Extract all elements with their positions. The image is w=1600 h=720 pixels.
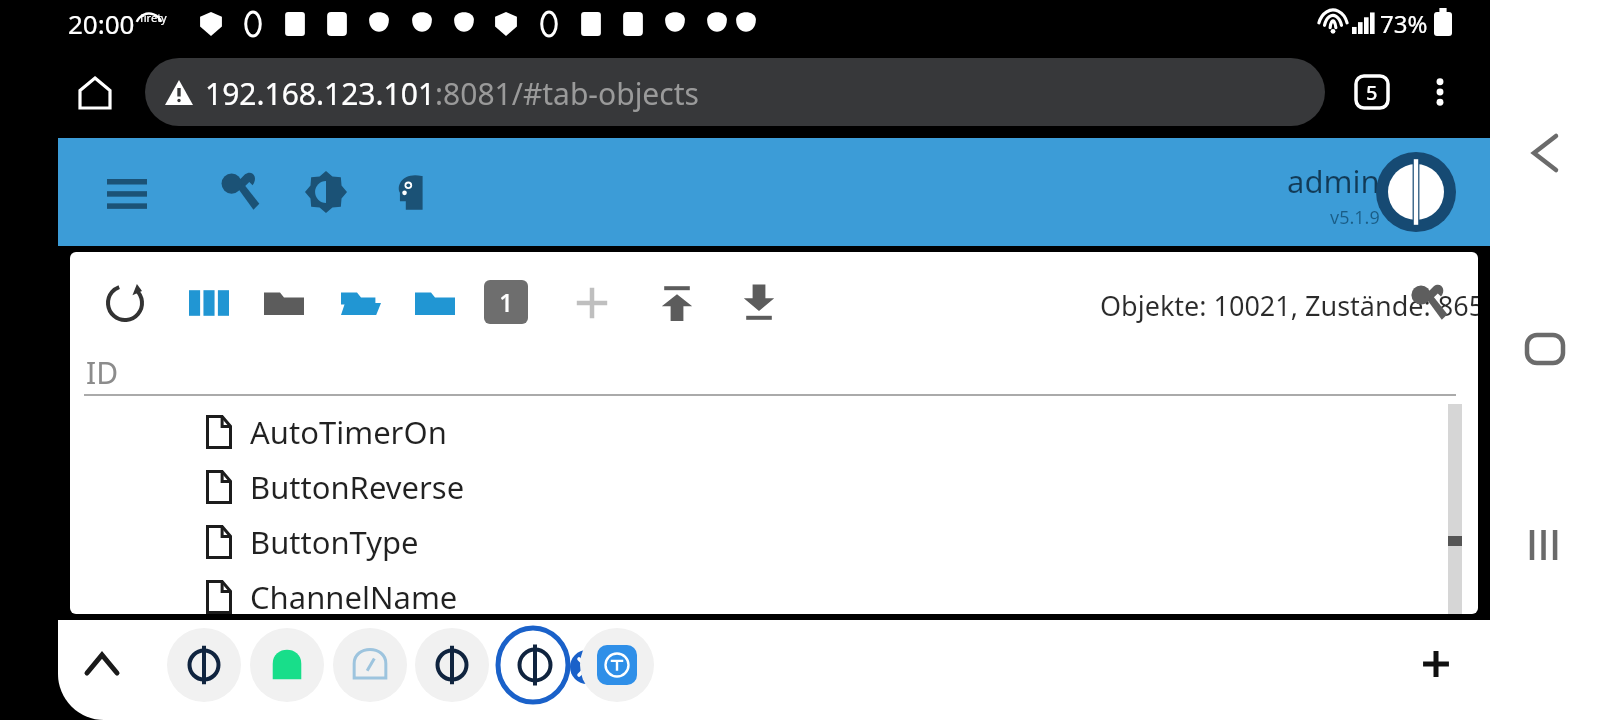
button[interactable]: Import [648, 274, 706, 332]
staticText: 20:00 [68, 6, 135, 41]
button[interactable]: Configure [1400, 274, 1458, 332]
button[interactable]: Tab 3 [329, 624, 411, 706]
staticText: ID [86, 352, 119, 393]
button[interactable]: Depth 1 [484, 280, 528, 324]
button[interactable]: Brightness [294, 160, 358, 224]
staticText: 73% [1380, 7, 1428, 40]
button[interactable]: Expand [72, 634, 132, 694]
button[interactable]: ChannelName [70, 569, 1450, 614]
button[interactable]: Tab 5 [494, 624, 576, 706]
button[interactable]: Tab 1 [163, 624, 245, 706]
button[interactable]: More options [1416, 68, 1464, 116]
button[interactable]: Add [563, 274, 621, 332]
staticText: Objekte: 10021, Zustände: 8652 [1100, 287, 1478, 324]
button[interactable]: Export [730, 274, 788, 332]
button[interactable]: ButtonReverse [70, 459, 1450, 514]
staticText: 1 [499, 285, 514, 319]
button[interactable]: Refresh [96, 274, 154, 332]
staticText: firety [140, 10, 167, 25]
button[interactable]: 192.168.123.101:8081/#tab-objects [145, 58, 1325, 126]
button[interactable]: Home [1518, 322, 1572, 376]
button[interactable]: Folder [255, 274, 313, 332]
button[interactable]: New tab [1406, 634, 1466, 694]
button[interactable]: Close tab [570, 650, 604, 684]
button[interactable]: ioBroker [1376, 152, 1456, 232]
button[interactable]: Tabs [1348, 68, 1396, 116]
button[interactable]: Tab 6 [576, 624, 658, 706]
button[interactable]: Back [1518, 126, 1572, 180]
button[interactable]: Expand all [332, 274, 390, 332]
button[interactable]: Settings [208, 160, 272, 224]
staticText: ButtonType [250, 521, 419, 563]
button[interactable]: Expert mode [378, 160, 442, 224]
staticText: ButtonReverse [250, 466, 465, 508]
staticText: ChannelName [250, 576, 458, 614]
button[interactable]: Columns [180, 274, 238, 332]
button[interactable]: Recents [1518, 518, 1572, 572]
button[interactable]: Collapse all [406, 274, 464, 332]
button[interactable]: Tab 4 [411, 624, 493, 706]
staticText: admin [1287, 160, 1380, 202]
staticText: 192.168.123.101:8081/#tab-objects [205, 73, 699, 114]
button[interactable]: Tab 2 [246, 624, 328, 706]
button[interactable]: Home [70, 68, 120, 118]
staticText: 5 [1366, 79, 1378, 106]
button[interactable]: ButtonType [70, 514, 1450, 569]
button[interactable]: AutoTimerOn [70, 404, 1450, 459]
staticText: v5.1.9 [1330, 205, 1380, 230]
staticText: AutoTimerOn [250, 411, 447, 453]
button[interactable]: Menu [96, 162, 158, 224]
